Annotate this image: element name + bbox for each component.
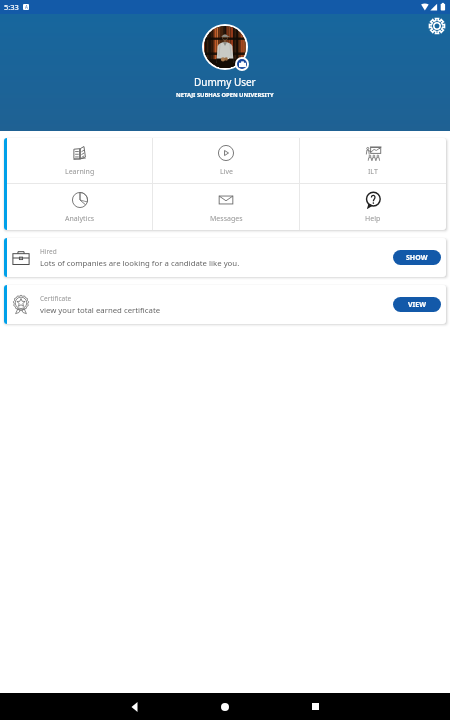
button[interactable]: VIEW	[393, 297, 441, 312]
staticText: SHOW	[406, 253, 428, 263]
button[interactable]: ILT	[300, 138, 446, 183]
button[interactable]: Home	[180, 693, 270, 720]
staticText: Live	[220, 167, 233, 177]
button[interactable]: Analytics	[7, 184, 152, 230]
button[interactable]: Profile photo	[204, 26, 246, 68]
staticText: Certificate	[40, 294, 72, 303]
button[interactable]: Change photo	[237, 59, 247, 69]
staticText: NETAJI SUBHAS OPEN UNIVERSITY	[176, 91, 274, 99]
button[interactable]: Back	[90, 693, 180, 720]
staticText: A	[25, 4, 28, 10]
staticText: Messages	[210, 214, 243, 224]
staticText: Learning	[65, 167, 95, 177]
button[interactable]: Settings	[426, 15, 448, 37]
button[interactable]: Messages	[153, 184, 299, 230]
staticText: view your total earned certificate	[40, 305, 161, 316]
staticText: ILT	[368, 167, 378, 177]
staticText: Dummy User	[194, 75, 256, 89]
button[interactable]: Certificate	[4, 285, 446, 324]
staticText: 5:33	[4, 2, 19, 12]
button[interactable]: SHOW	[393, 250, 441, 265]
staticText: VIEW	[408, 300, 426, 310]
staticText: Hired	[40, 247, 57, 256]
button[interactable]: Hired	[4, 238, 446, 277]
staticText: Lots of companies are looking for a cand…	[40, 258, 240, 269]
button[interactable]: Learning	[7, 138, 152, 183]
button[interactable]: Recents	[270, 693, 360, 720]
button[interactable]: Live	[153, 138, 299, 183]
button[interactable]: Help	[300, 184, 446, 230]
staticText: Analytics	[65, 214, 95, 224]
staticText: Help	[365, 214, 381, 224]
